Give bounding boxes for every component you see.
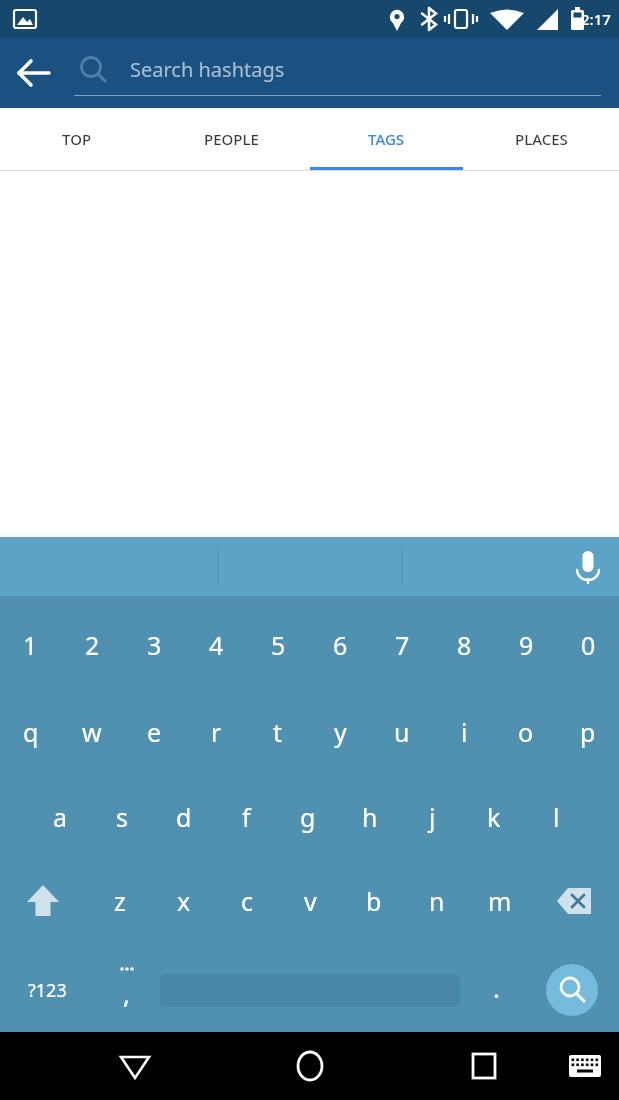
button[interactable]: TAGS (309, 108, 464, 170)
button[interactable]: d (153, 782, 215, 852)
button[interactable]: u (371, 697, 433, 767)
staticText: g (300, 800, 316, 834)
staticText: u (394, 715, 410, 749)
staticText: 2:17 (581, 9, 611, 29)
staticText: 9 (519, 628, 534, 662)
staticText: PEOPLE (204, 129, 259, 149)
button[interactable]: Search hashtags (74, 42, 601, 96)
button[interactable]: Recents (455, 1037, 513, 1095)
staticText: n (429, 884, 445, 918)
staticText: z (114, 884, 126, 918)
button[interactable]: o (495, 697, 557, 767)
button[interactable]: 5 (247, 610, 309, 680)
staticText: e (147, 715, 162, 749)
staticText: b (366, 884, 382, 918)
button[interactable]: Switch keyboard (559, 1040, 611, 1092)
staticText: y (334, 715, 347, 749)
staticText: h (362, 800, 378, 834)
staticText: k (487, 800, 501, 834)
button[interactable]: g (277, 782, 339, 852)
staticText: d (176, 800, 192, 834)
button[interactable]: 8 (433, 610, 495, 680)
button[interactable]: x (152, 866, 216, 936)
staticText: t (273, 715, 283, 749)
button[interactable]: z (88, 866, 152, 936)
staticText: 6 (333, 628, 348, 662)
staticText: PLACES (515, 129, 568, 149)
button[interactable]: j (401, 782, 463, 852)
staticText: s (116, 800, 128, 834)
staticText: l (553, 800, 560, 834)
button[interactable]: i (433, 697, 495, 767)
staticText: o (518, 715, 534, 749)
button[interactable]: p (557, 697, 619, 767)
button[interactable]: 6 (309, 610, 371, 680)
staticText: 1 (23, 628, 38, 662)
staticText: r (211, 715, 222, 749)
staticText: v (304, 884, 317, 918)
button[interactable]: Shift (4, 866, 82, 936)
staticText: x (177, 884, 191, 918)
button[interactable]: y (309, 697, 371, 767)
staticText: i (461, 715, 468, 749)
button[interactable]: f (215, 782, 277, 852)
staticText: a (53, 800, 68, 834)
staticText: p (580, 715, 596, 749)
staticText: c (241, 884, 254, 918)
button[interactable]: ?123 (6, 952, 88, 1028)
button[interactable]: b (342, 866, 405, 936)
button[interactable]: s (91, 782, 153, 852)
staticText: TAGS (368, 129, 405, 149)
button[interactable]: n (405, 866, 468, 936)
button[interactable]: Voice input (563, 542, 613, 592)
staticText: w (82, 715, 102, 749)
button[interactable]: a (30, 782, 91, 852)
button[interactable]: TOP (0, 108, 154, 170)
staticText: 2 (85, 628, 100, 662)
button[interactable]: w (61, 697, 123, 767)
staticText: f (242, 800, 251, 834)
staticText: j (429, 800, 436, 834)
button[interactable]: k (463, 782, 525, 852)
staticText: ?123 (28, 978, 67, 1003)
staticText: 3 (147, 628, 162, 662)
button[interactable]: h (339, 782, 401, 852)
button[interactable]: Back (6, 45, 62, 101)
button[interactable]: . (466, 952, 526, 1028)
button[interactable]: PEOPLE (154, 108, 309, 170)
button[interactable]: 2 (61, 610, 123, 680)
button[interactable]: q (0, 697, 61, 767)
staticText: 4 (209, 628, 224, 662)
button[interactable]: 3 (123, 610, 185, 680)
button[interactable]: r (185, 697, 247, 767)
button[interactable]: Hide keyboard (106, 1037, 164, 1095)
button[interactable]: 4 (185, 610, 247, 680)
button[interactable]: 0 (557, 610, 619, 680)
staticText: q (23, 715, 39, 749)
staticText: Search hashtags (130, 56, 285, 83)
button[interactable]: Backspace (537, 866, 615, 936)
staticText: 8 (457, 628, 472, 662)
staticText: 7 (395, 628, 410, 662)
staticText: 0 (581, 628, 596, 662)
button[interactable]: v (279, 866, 342, 936)
staticText: TOP (62, 129, 92, 149)
staticText: 5 (271, 628, 286, 662)
button[interactable]: 9 (495, 610, 557, 680)
button[interactable]: l (525, 782, 587, 852)
button[interactable]: 7 (371, 610, 433, 680)
button[interactable]: m (468, 866, 531, 936)
button[interactable]: , (96, 952, 156, 1028)
button[interactable]: t (247, 697, 309, 767)
button[interactable]: PLACES (464, 108, 619, 170)
button[interactable]: c (216, 866, 279, 936)
staticText: m (488, 884, 512, 918)
staticText: . (493, 970, 500, 1005)
button[interactable]: e (123, 697, 185, 767)
button[interactable]: Home (281, 1037, 339, 1095)
staticText: , (123, 976, 130, 1011)
button[interactable]: Search (546, 964, 598, 1016)
button[interactable]: 1 (0, 610, 61, 680)
